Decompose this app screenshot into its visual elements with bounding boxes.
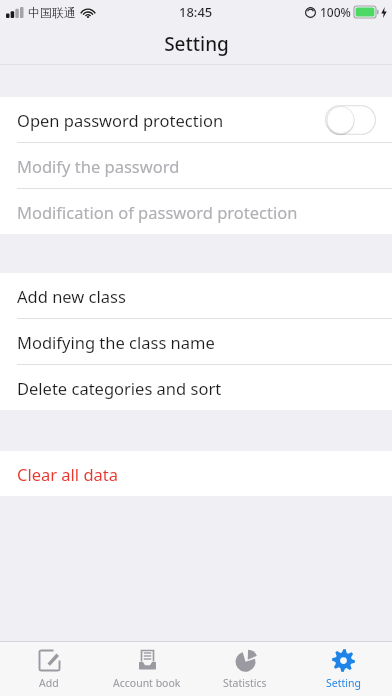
staticText: Statistics [223,676,267,690]
staticText: Modification of password protection [17,201,376,223]
button[interactable]: Add new class [0,273,392,318]
staticText: Setting [164,31,229,57]
button[interactable]: Add [0,642,98,696]
staticText: Add new class [17,285,376,307]
button[interactable]: Modifying the class name [0,319,392,364]
button[interactable]: Clear all data [0,451,392,496]
button[interactable]: Modification of password protection [0,189,392,234]
staticText: 18:45 [179,3,213,21]
button[interactable]: Open password protection toggle [325,105,376,135]
button[interactable]: Open password protection [0,97,392,142]
staticText: Open password protection [17,109,325,131]
staticText: Modify the password [17,155,376,177]
staticText: Clear all data [17,463,376,485]
button[interactable]: Statistics [196,642,294,696]
staticText: 100% [320,4,351,20]
staticText: Modifying the class name [17,331,376,353]
staticText: Add [39,676,59,690]
button[interactable]: Setting [294,642,392,696]
staticText: 中国联通 [28,5,76,20]
staticText: Setting [326,676,361,690]
button[interactable]: Account book [98,642,196,696]
button[interactable]: Modify the password [0,143,392,188]
staticText: Account book [113,676,181,690]
button[interactable]: Delete categories and sort [0,365,392,410]
staticText: Delete categories and sort [17,377,376,399]
